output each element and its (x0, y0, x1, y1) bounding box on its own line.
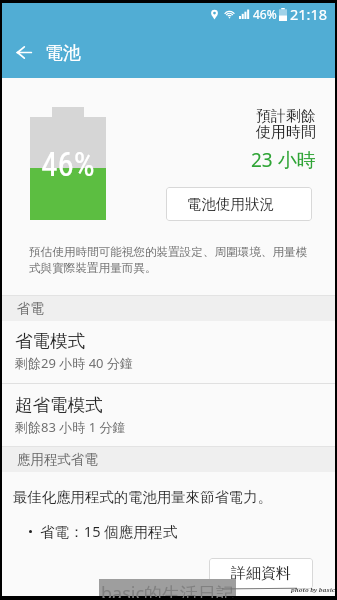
staticText: 預計剩餘 (256, 107, 316, 126)
staticText: 46% (253, 6, 277, 22)
staticText: 電池 (45, 42, 81, 65)
staticText: 詳細資料 (231, 564, 291, 583)
button[interactable]: 省電模式 (2, 319, 335, 382)
staticText: 剩餘83 小時 1 分鐘 (15, 418, 126, 436)
button[interactable]: 詳細資料 (209, 558, 313, 589)
staticText: 23 小時 (251, 147, 316, 173)
button[interactable]: 超省電模式 (2, 384, 335, 446)
staticText: 應用程式省電 (17, 451, 98, 468)
staticText: 剩餘29 小時 40 分鐘 (15, 354, 133, 372)
staticText: 21:18 (290, 4, 328, 24)
staticText: 預估使用時間可能視您的裝置設定、周圍環境、用量模式與實際裝置用量而異。 (29, 245, 316, 275)
staticText: basic的生活日記 (101, 581, 235, 598)
staticText: 電池使用狀況 (187, 195, 274, 213)
button[interactable]: Back (5, 33, 43, 71)
staticText: 46% (30, 145, 106, 184)
staticText: 最佳化應用程式的電池用量來節省電力。 (13, 488, 273, 506)
staticText: 省電：15 個應用程式 (40, 521, 178, 541)
staticText: 超省電模式 (15, 394, 103, 416)
staticText: 省電 (17, 300, 44, 317)
staticText: 使用時間 (256, 123, 316, 142)
staticText: 省電模式 (15, 330, 85, 352)
button[interactable]: 電池使用狀況 (166, 187, 312, 221)
staticText: photo by basic (291, 586, 335, 594)
